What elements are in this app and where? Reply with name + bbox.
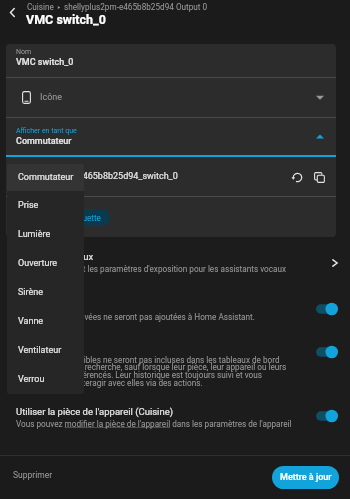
staticText: Ventilateur: [18, 345, 62, 356]
button[interactable]: Restore: [289, 169, 305, 185]
button[interactable]: Ventilateur: [7, 336, 84, 365]
button[interactable]: Vanne: [7, 307, 84, 336]
button[interactable]: Ouverture: [7, 249, 84, 278]
staticText: Assistants vocaux: [16, 251, 94, 262]
staticText: shellyplus2pm_e465b8b25d94_switch_0: [16, 171, 289, 182]
staticText: VMC switch_0: [26, 12, 106, 27]
staticText: Icône: [40, 92, 63, 103]
staticText: Nom: [16, 48, 32, 56]
staticText: Supprimer: [13, 470, 53, 480]
button[interactable]: Supprimer: [9, 467, 57, 483]
staticText: Afficher en tant que: [16, 127, 77, 135]
button[interactable]: Activé: [0, 299, 350, 322]
button[interactable]: Icône: [6, 78, 336, 117]
button[interactable]: Nom: [6, 44, 336, 77]
button[interactable]: Utiliser la pièce de l'appareil (Cuisine…: [0, 406, 350, 429]
staticText: Ajouter une étiquette: [25, 213, 101, 223]
button[interactable]: Back: [2, 2, 23, 23]
staticText: VMC switch_0: [16, 57, 74, 68]
staticText: Les entités désactivées ne seront pas aj…: [16, 312, 255, 322]
button[interactable]: Sirène: [7, 278, 84, 307]
button[interactable]: Visible: [0, 342, 350, 388]
staticText: Les entités non visibles ne seront pas i…: [16, 355, 290, 388]
button[interactable]: Prise: [7, 191, 84, 220]
button[interactable]: Copy: [311, 169, 327, 185]
button[interactable]: Toggle: [316, 302, 338, 316]
staticText: Prise: [18, 200, 39, 211]
button[interactable]: Commutateur: [7, 164, 84, 191]
button[interactable]: Lumière: [7, 220, 84, 249]
button[interactable]: Verrou: [7, 365, 84, 394]
staticText: Verrou: [18, 374, 45, 385]
staticText: Gérez les entités et les paramètres d'ex…: [16, 264, 287, 274]
staticText: Commutateur: [18, 172, 74, 183]
staticText: Vous pouvez modifier la pièce de l'appar…: [16, 419, 292, 429]
staticText: Commutateur: [16, 136, 72, 147]
button[interactable]: Mettre à jour: [272, 466, 339, 489]
staticText: Sirène: [18, 287, 44, 298]
button[interactable]: Assistants vocaux: [0, 251, 350, 274]
button[interactable]: Toggle: [316, 345, 338, 359]
staticText: Utiliser la pièce de l'appareil (Cuisine…: [16, 406, 174, 417]
staticText: Cuisine: [27, 2, 54, 12]
staticText: Mettre à jour: [280, 472, 332, 483]
staticText: shellyplus2pm-e465b8b25d94 Output 0: [64, 2, 208, 12]
staticText: Ouverture: [18, 258, 58, 269]
staticText: Vanne: [18, 316, 44, 327]
staticText: Lumière: [18, 229, 51, 240]
staticText: Visible: [16, 342, 45, 353]
button[interactable]: Ajouter une étiquette: [16, 209, 110, 226]
button[interactable]: Toggle: [316, 409, 338, 423]
button[interactable]: Afficher en tant que: [6, 118, 336, 155]
